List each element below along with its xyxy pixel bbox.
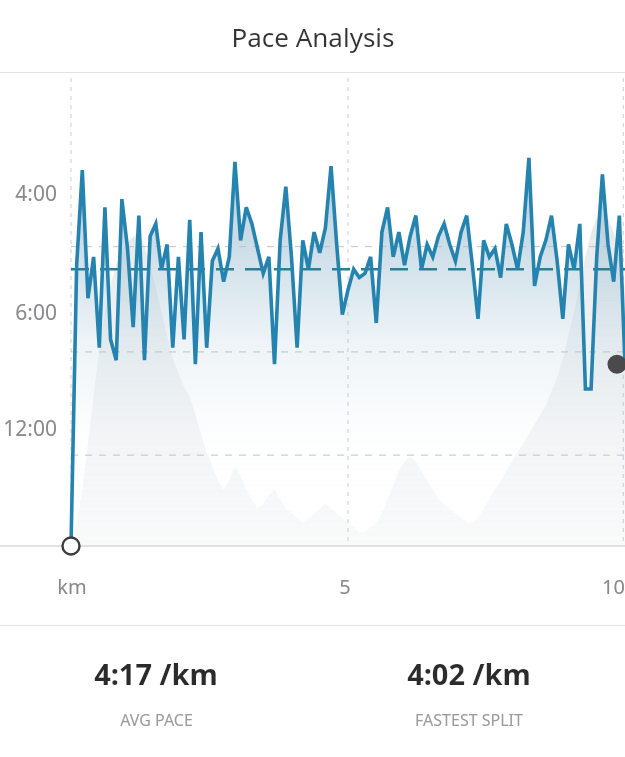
staticText: 4:00 [15, 179, 57, 208]
staticText: 6:00 [15, 298, 57, 327]
staticText: AVG PACE [120, 709, 193, 731]
button[interactable]: 4:17 /km [0, 626, 312, 757]
staticText: 5 [339, 573, 351, 600]
staticText: km [57, 573, 87, 600]
staticText: Pace Analysis [231, 19, 395, 54]
staticText: 10 [602, 573, 625, 600]
staticText: 12:00 [3, 414, 57, 443]
button[interactable]: 4:02 /km [312, 626, 625, 757]
staticText: 4:17 /km [94, 654, 218, 693]
staticText: FASTEST SPLIT [415, 709, 523, 731]
staticText: 4:02 /km [407, 654, 531, 693]
button[interactable]: Pace chart [0, 73, 625, 625]
